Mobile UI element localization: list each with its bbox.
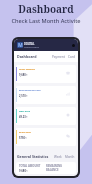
staticText: Dashboard [17,54,37,59]
staticText: REMAINING [46,164,63,168]
staticText: Month [65,155,75,159]
staticText: REMAINING BALANCE [19,89,41,92]
staticText: BALANCE [46,168,59,172]
staticText: Week [54,155,62,159]
staticText: ACCOUNTING [24,46,39,49]
button[interactable]: Week [54,155,62,159]
staticText: MEAL RATE [19,110,30,113]
staticText: Card [68,55,75,59]
staticText: 9,680 ৳ [19,73,28,77]
button[interactable]: EXTRA TAKA [16,128,76,146]
button[interactable]: Dashboard [17,54,37,59]
button[interactable]: MEAL RATE [16,107,76,125]
button[interactable]: Payment [52,55,65,59]
button[interactable]: Card [68,55,75,59]
staticText: TOTAL AMOUNT [19,164,41,168]
staticText: TOTAL AMOUNT [19,68,35,71]
staticText: General Statistics [17,154,49,159]
staticText: EXTRA TAKA [19,131,31,134]
button[interactable]: TOTAL AMOUNT [16,65,76,83]
button[interactable]: REMAINING BALANCE [16,86,76,104]
staticText: 9,680 ৳ [19,169,28,172]
staticText: DIGITAL [24,42,35,46]
button[interactable]: TOTAL AMOUNT [16,162,76,174]
staticText: Check Last Month Activite [11,17,81,25]
button[interactable]: Month [65,155,75,159]
staticText: Dashboard [18,2,74,16]
staticText: 5750 ৳ [19,136,27,140]
staticText: 49.23 ৳ [19,115,28,119]
staticText: 2,510 ৳ [19,94,28,98]
staticText: Payment [52,55,65,59]
staticText: M [18,42,23,48]
